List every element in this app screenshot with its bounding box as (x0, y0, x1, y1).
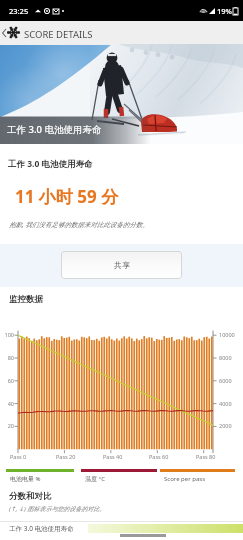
staticText: (↑, ↓) 图标表示与您的设备的对比。 (9, 505, 106, 513)
staticText: 温度 °C (85, 475, 105, 483)
staticText: 4000 (219, 400, 232, 407)
staticText: 6000 (219, 377, 232, 384)
staticText: 分数和对比 (9, 491, 52, 502)
staticText: 抱歉, 我们没有足够的数据来对比此设备的分数。 (9, 220, 149, 229)
staticText: 8000 (219, 354, 232, 361)
staticText: 2000 (219, 422, 232, 429)
staticText: 11 小时 59 分 (15, 185, 119, 208)
staticText: 80 (0, 354, 14, 361)
staticText: 100 (0, 331, 14, 338)
staticText: Pass 60 (149, 453, 169, 460)
staticText: Pass 0 (10, 453, 27, 460)
staticText: 工作 3.0 电池使用寿命 (7, 123, 102, 136)
staticText: Pass 40 (103, 453, 123, 460)
staticText: Pass 80 (196, 453, 216, 460)
staticText: Pass 20 (56, 453, 76, 460)
staticText: 23:25 (9, 6, 29, 16)
staticText: SCORE DETAILS (24, 28, 93, 41)
button[interactable]: Back (0, 21, 7, 45)
staticText: 工作 3.0 电池使用寿命 (8, 158, 93, 170)
staticText: 40 (0, 400, 14, 407)
staticText: 电池电量 % (10, 475, 41, 483)
staticText: 60 (0, 377, 14, 384)
button[interactable]: 共享 (61, 251, 182, 279)
staticText: 10000 (219, 331, 235, 338)
staticText: 共享 (114, 260, 130, 270)
staticText: 19% (217, 6, 232, 16)
staticText: 20 (0, 422, 14, 429)
staticText: Score per pass (164, 475, 206, 483)
staticText: 工作 3.0 电池使用寿命 (9, 524, 74, 533)
staticText: 监控数据 (9, 294, 43, 305)
